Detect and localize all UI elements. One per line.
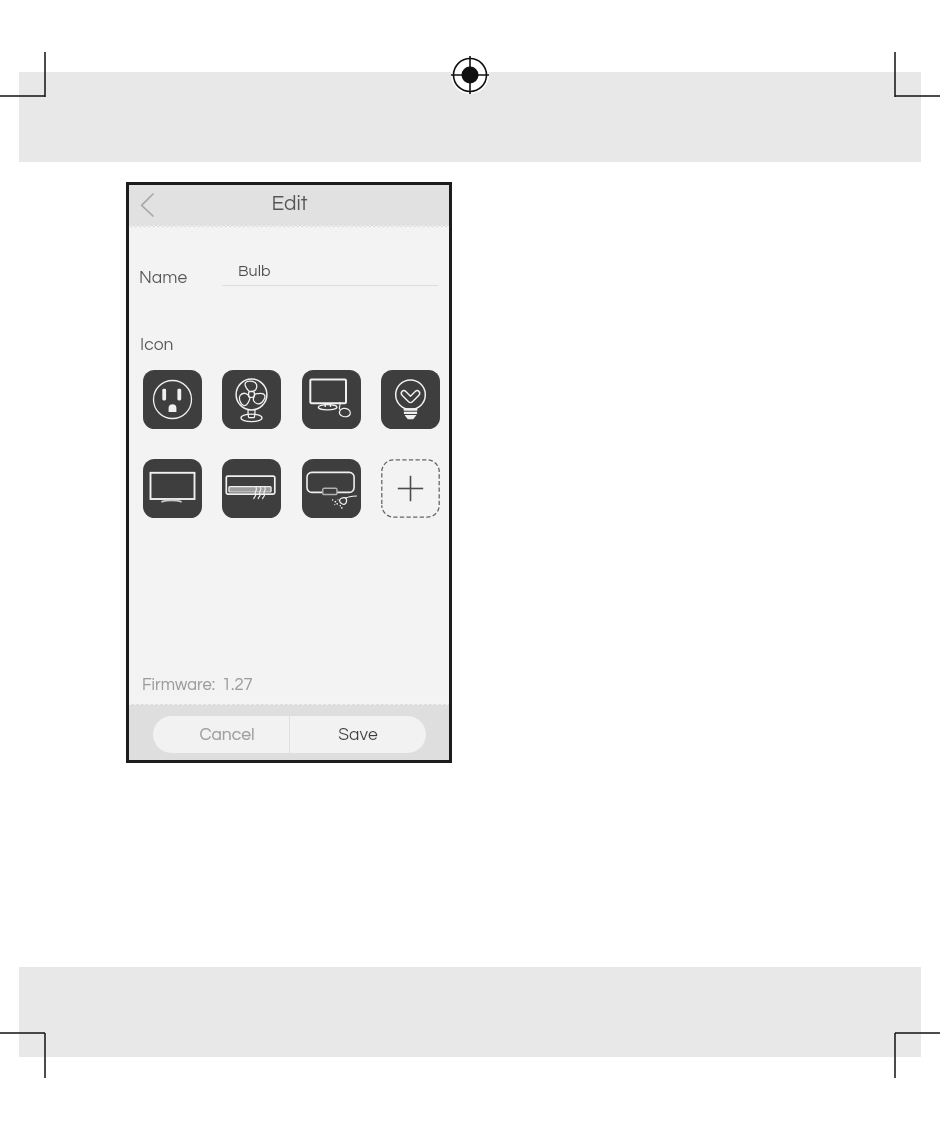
staticText: Edit [271, 193, 308, 215]
staticText: Firmware: 1.27 [142, 676, 253, 693]
button[interactable]: Cancel [153, 716, 289, 753]
button[interactable]: Bulb [222, 257, 438, 286]
button[interactable]: Monitor [302, 370, 361, 429]
button[interactable]: Outlet [143, 370, 202, 429]
staticText: Icon [140, 336, 174, 354]
button[interactable]: Back [134, 187, 166, 219]
button[interactable]: Air conditioner [222, 459, 281, 518]
staticText: Bulb [238, 263, 271, 279]
button[interactable]: TV [143, 459, 202, 518]
button[interactable]: Add icon [381, 459, 440, 518]
button[interactable]: Save [290, 716, 426, 753]
staticText: Cancel [199, 726, 255, 744]
staticText: Save [338, 726, 378, 744]
button[interactable]: Bulb [381, 370, 440, 429]
button[interactable]: Water heater [302, 459, 361, 518]
staticText: Name [139, 269, 188, 287]
button[interactable]: Fan [222, 370, 281, 429]
